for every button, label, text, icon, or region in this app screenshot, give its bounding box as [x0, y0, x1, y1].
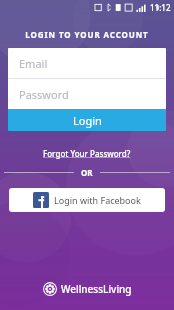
button[interactable]: Login with Facebook — [9, 188, 165, 212]
button[interactable]: Login — [8, 109, 166, 131]
staticText: Login with Facebook — [54, 194, 141, 206]
button[interactable]: Password — [8, 79, 166, 109]
staticText: LOGIN TO YOUR ACCOUNT — [0, 29, 174, 40]
staticText: Password — [19, 87, 69, 102]
staticText: 11:12 — [150, 2, 171, 13]
staticText: OR — [81, 167, 93, 178]
staticText: Login — [73, 113, 102, 128]
staticText: Email — [19, 56, 48, 71]
button[interactable]: Forgot Your Password? — [37, 146, 137, 161]
staticText: WellnessLiving — [61, 282, 132, 296]
staticText: Forgot Your Password? — [43, 148, 131, 159]
button[interactable]: Email — [8, 48, 166, 78]
